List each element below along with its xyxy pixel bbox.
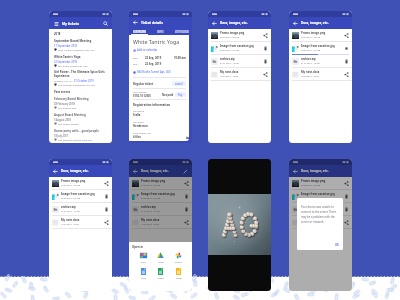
button[interactable]: My note.docx [292, 216, 349, 228]
button[interactable]: Share [184, 220, 189, 225]
button[interactable]: Share [263, 72, 268, 77]
button[interactable]: Photos [172, 251, 185, 264]
button[interactable]: Delete [184, 207, 189, 212]
staticText: 22 September 2018 [54, 60, 78, 63]
staticText: 20.05.2019 - 347 kB [301, 36, 321, 39]
staticText: Past events [54, 90, 71, 94]
staticText: Experience [54, 74, 70, 78]
button[interactable]: Promo image.png [211, 29, 268, 41]
staticText: $192.15 (USD) [133, 94, 151, 98]
other: Search [103, 21, 108, 26]
button[interactable]: Share [344, 33, 349, 38]
button[interactable]: My note.docx [292, 68, 349, 80]
button[interactable]: archive.zip [52, 203, 109, 215]
button[interactable]: February Board Meeting [54, 96, 108, 112]
button[interactable]: Share [344, 181, 349, 186]
button[interactable]: archive.zip [132, 203, 189, 215]
button[interactable]: Back [129, 165, 192, 177]
staticText: 2018 [54, 32, 61, 36]
staticText: 01.01.2019 - 19 MB [61, 210, 80, 213]
button[interactable]: Drive [154, 251, 167, 264]
button[interactable]: archive.zip [292, 203, 349, 215]
staticText: OK [335, 243, 339, 247]
button[interactable]: OVERVIEW [129, 27, 150, 35]
button[interactable]: Image from vacation.jpg [52, 190, 109, 202]
button[interactable]: Share [104, 181, 109, 186]
button[interactable]: Delete [344, 207, 349, 212]
button[interactable]: Share [104, 220, 109, 225]
button[interactable]: Promo image.png [132, 177, 189, 189]
button[interactable]: Open in [129, 242, 192, 291]
button[interactable]: Slides [172, 267, 185, 280]
button[interactable]: Back [208, 17, 271, 29]
staticText: February Board Meeting [54, 97, 89, 101]
staticText: Image from vacation.jpg [301, 192, 335, 196]
button[interactable]: My note.docx [132, 216, 189, 228]
button[interactable]: Promo image.png [292, 29, 349, 41]
staticText: 10:00 am [174, 56, 186, 60]
button[interactable]: September Board Meeting [54, 38, 108, 54]
button[interactable]: ATTENDEES [171, 27, 192, 35]
button[interactable]: Pay [178, 93, 183, 96]
staticText: 01.01.2019 - 19 MB [141, 210, 160, 213]
button[interactable]: Share [263, 33, 268, 38]
staticText: First name [133, 110, 144, 113]
button[interactable]: OK [334, 242, 340, 248]
button[interactable]: Stop download [344, 46, 349, 51]
button[interactable]: Image from vacation.jpg [132, 190, 189, 202]
staticText: Docs, images, etc. [301, 169, 329, 173]
button[interactable]: Share [344, 72, 349, 77]
button[interactable]: Delete [344, 59, 349, 64]
staticText: Henderson [133, 124, 148, 128]
staticText: Docs, images, etc. [220, 21, 248, 25]
staticText: Image from vacation.jpg [61, 192, 95, 196]
button[interactable]: Delete [263, 59, 268, 64]
staticText: 675 Connelly Underpass Apt. 927 [58, 83, 96, 86]
button[interactable]: Menu [49, 17, 112, 29]
button[interactable]: Back [289, 17, 352, 29]
staticText: 20.06.2019 - 5,2 MB [301, 49, 321, 52]
button[interactable]: Image from vacation.jpg [292, 190, 349, 202]
staticText: cancel [175, 82, 183, 85]
button[interactable]: Promo image.png [52, 177, 109, 189]
button[interactable]: Sheets [154, 267, 167, 280]
button[interactable]: cancel [175, 82, 183, 85]
button[interactable]: My note.docx [52, 216, 109, 228]
button[interactable]: Files [137, 251, 150, 264]
staticText: August Board Meeting [54, 113, 86, 117]
button[interactable]: Share [344, 220, 349, 225]
staticText: Promo image.png [301, 179, 326, 183]
button[interactable]: Dance party with... good people [54, 128, 108, 143]
staticText: 01.01.2019 - 19 MB [301, 62, 320, 65]
button[interactable]: 684 Rutha Tunnel Apt. 450 [133, 70, 171, 74]
button[interactable]: Promo image.png [292, 177, 349, 189]
button[interactable]: Back [129, 17, 192, 27]
button[interactable]: archive.zip [211, 55, 268, 67]
button[interactable]: Docs [137, 267, 150, 280]
button[interactable]: Girl Power - The Ultimate Spice Girls [54, 70, 108, 89]
button[interactable]: August Board Meeting [54, 112, 108, 128]
staticText: 20.05.2019 - 347 kB [301, 184, 321, 187]
button[interactable]: Image from vacation.jpg [211, 42, 268, 54]
staticText: Promo image.png [301, 31, 326, 35]
staticText: Promo image.png [61, 179, 86, 183]
staticText: Image from vacation.jpg [220, 44, 254, 48]
button[interactable]: Back [289, 165, 352, 177]
staticText: server or network. [301, 220, 325, 224]
button[interactable]: Back [49, 165, 112, 177]
button[interactable]: Delete [104, 194, 109, 199]
button[interactable]: White Tantric Yoga [54, 54, 108, 70]
button[interactable]: Add to calendar [133, 48, 158, 52]
staticText: Image from vacation.jpg [141, 192, 175, 196]
staticText: 20.06.2019 - 5,2 MB [301, 197, 321, 200]
staticText: 396 Gilbert Ridges [58, 122, 79, 125]
button[interactable]: Delete [104, 207, 109, 212]
button[interactable]: Delete [184, 194, 189, 199]
button[interactable]: Delete [263, 46, 268, 51]
button[interactable]: My note.docx [211, 68, 268, 80]
button[interactable]: Delete [344, 194, 349, 199]
button[interactable]: Image from vacation.jpg [292, 42, 349, 54]
button[interactable]: Share [184, 181, 189, 186]
button[interactable]: archive.zip [292, 55, 349, 67]
button[interactable]: INFO [150, 27, 171, 35]
